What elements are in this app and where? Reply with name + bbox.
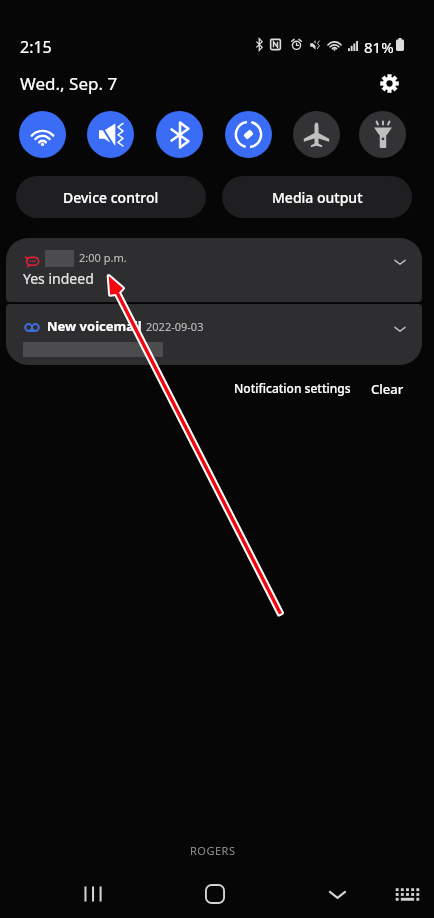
button[interactable]: Clear (365, 374, 410, 404)
staticText: ROGERS (190, 843, 236, 858)
staticText: Media output (272, 188, 363, 207)
button[interactable]: Bluetooth (156, 111, 203, 158)
button[interactable]: Settings (375, 69, 403, 97)
button[interactable]: New voicemail (6, 304, 422, 365)
staticText: Device control (63, 188, 159, 207)
staticText: Wed., Sep. 7 (20, 72, 118, 95)
button[interactable]: Sound off (87, 111, 134, 158)
button[interactable]: Keyboard (387, 874, 427, 914)
button[interactable]: Recents (72, 874, 112, 914)
button[interactable]: Airplane mode (293, 111, 340, 158)
staticText: Clear (371, 380, 404, 398)
staticText: 81% (364, 37, 394, 57)
button[interactable]: Wi-Fi (19, 111, 66, 158)
staticText: Yes indeed (23, 269, 94, 288)
button[interactable]: Home (195, 874, 235, 914)
staticText: 2:00 p.m. (79, 250, 127, 265)
button[interactable]: Auto rotate (225, 111, 272, 158)
button[interactable]: 2:00 p.m. (6, 238, 422, 302)
staticText: Notification settings (234, 380, 351, 396)
button[interactable]: Flashlight (359, 111, 406, 158)
button[interactable]: Collapse (317, 874, 357, 914)
button[interactable]: Media output (222, 176, 412, 218)
staticText: 2:15 (20, 36, 52, 58)
staticText: New voicemail (47, 317, 142, 335)
button[interactable]: Notification settings (228, 374, 357, 402)
staticText: 2022-09-03 (146, 319, 204, 334)
button[interactable]: Device control (16, 176, 206, 218)
